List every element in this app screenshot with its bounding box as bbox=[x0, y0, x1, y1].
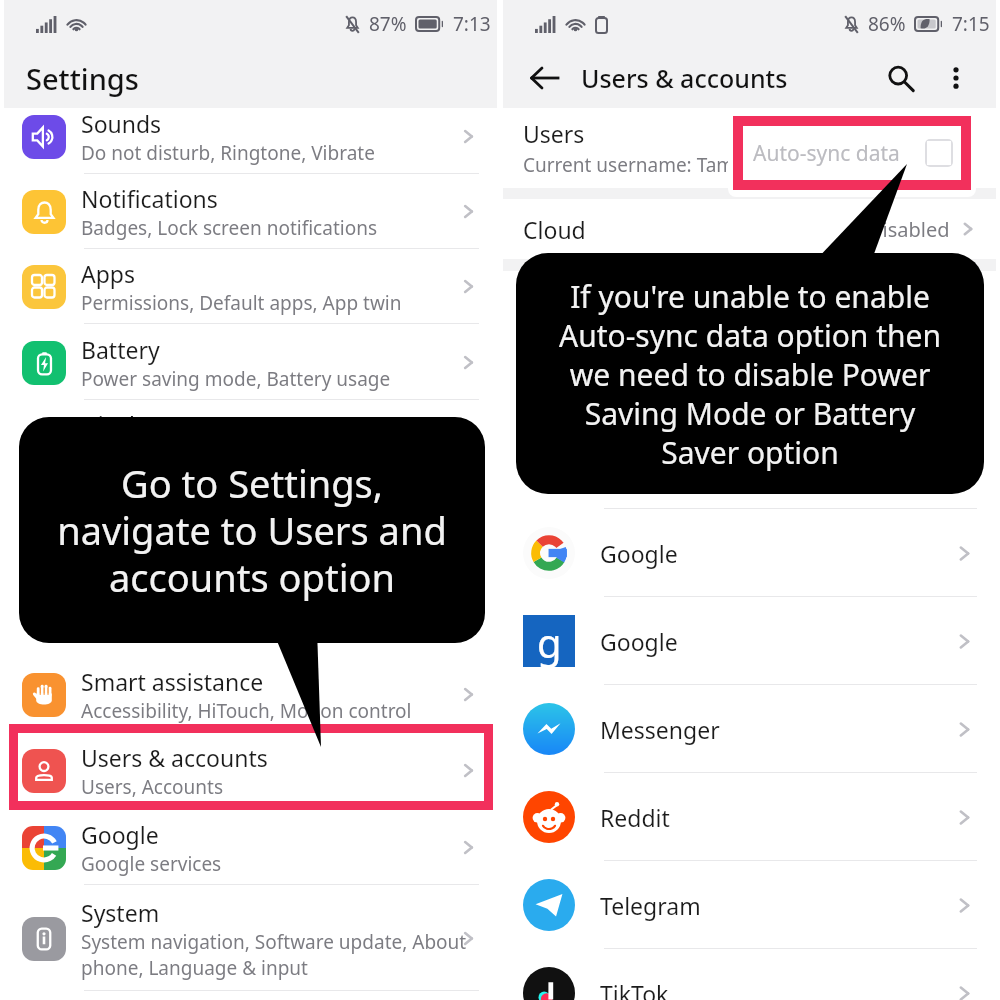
button[interactable]: Auto-sync data bbox=[743, 126, 961, 180]
staticText: Sounds bbox=[81, 108, 162, 139]
staticText: Go to Settings, navigate to Users and ac… bbox=[57, 457, 447, 603]
staticText: phone, Language & input bbox=[81, 955, 308, 981]
button[interactable]: Search bbox=[878, 56, 922, 100]
button[interactable]: Telegram bbox=[503, 861, 996, 949]
staticText: TikTok bbox=[600, 978, 669, 1000]
staticText: Users & accounts bbox=[581, 61, 788, 95]
button[interactable]: Users bbox=[503, 108, 996, 188]
button[interactable]: Users & accounts bbox=[4, 733, 497, 808]
button[interactable]: g bbox=[503, 597, 996, 685]
staticText: Battery bbox=[81, 334, 160, 365]
button[interactable]: Storage bbox=[4, 476, 497, 551]
staticText: Disabled bbox=[868, 216, 950, 243]
staticText: Users & accounts bbox=[81, 742, 268, 773]
staticText: Fingerprint ID, Face unlock bbox=[81, 592, 320, 618]
staticText: Smart assistance bbox=[81, 666, 264, 697]
button[interactable]: TikTok bbox=[503, 949, 996, 1000]
button[interactable]: Cloud bbox=[503, 199, 996, 259]
button[interactable]: Apps bbox=[4, 249, 497, 324]
staticText: Storage bbox=[81, 485, 165, 516]
staticText: Accessibility, HiTouch, Motion control bbox=[81, 698, 412, 724]
button[interactable]: Security & privacy bbox=[4, 551, 497, 626]
staticText: g bbox=[537, 615, 562, 667]
button[interactable]: Smart assistance bbox=[4, 657, 497, 732]
staticText: Telegram bbox=[600, 890, 701, 921]
button[interactable]: Sounds bbox=[4, 99, 497, 174]
staticText: Users & accounts bbox=[81, 742, 268, 773]
staticText: Messenger bbox=[600, 714, 720, 745]
staticText: 7:15 bbox=[952, 11, 990, 37]
staticText: Cloud bbox=[523, 214, 586, 245]
staticText: Security & privacy bbox=[81, 560, 274, 591]
button[interactable]: System bbox=[4, 886, 497, 991]
staticText: Reddit bbox=[600, 802, 670, 833]
staticText: Users bbox=[523, 118, 585, 149]
button[interactable]: More options bbox=[936, 58, 976, 98]
staticText: Power saving mode, Battery usage bbox=[81, 366, 391, 392]
staticText: Users, Accounts bbox=[81, 774, 224, 800]
button[interactable]: Google bbox=[4, 810, 497, 885]
staticText: Auto-sync data bbox=[753, 139, 900, 168]
button[interactable]: Back bbox=[523, 56, 567, 100]
staticText: Apps bbox=[81, 258, 136, 289]
button[interactable]: Messenger bbox=[503, 685, 996, 773]
staticText: 7:13 bbox=[453, 11, 491, 37]
staticText: System navigation, Software update, Abou… bbox=[81, 929, 467, 955]
staticText: Do not disturb, Ringtone, Vibrate bbox=[81, 140, 375, 166]
staticText: Google bbox=[600, 626, 678, 657]
button[interactable]: Display bbox=[4, 400, 497, 475]
button[interactable]: Google bbox=[503, 509, 996, 597]
button[interactable]: Users & accounts bbox=[4, 733, 497, 808]
staticText: Current username: Tamil bbox=[523, 152, 744, 178]
staticText: Users, Accounts bbox=[81, 774, 224, 800]
staticText: Memory, Storage cleaner bbox=[81, 517, 305, 543]
staticText: 86% bbox=[868, 11, 906, 37]
staticText: Google bbox=[81, 819, 159, 850]
staticText: Settings bbox=[26, 59, 139, 98]
staticText: Google services bbox=[81, 851, 222, 877]
staticText: Display bbox=[81, 409, 160, 440]
staticText: If you're unable to enable Auto-sync dat… bbox=[559, 276, 941, 472]
staticText: 87% bbox=[369, 11, 407, 37]
staticText: System bbox=[81, 897, 160, 928]
staticText: Notifications bbox=[81, 183, 218, 214]
button[interactable]: Reddit bbox=[503, 773, 996, 861]
button[interactable]: Notifications bbox=[4, 174, 497, 249]
button[interactable]: Battery bbox=[4, 325, 497, 400]
staticText: Permissions, Default apps, App twin bbox=[81, 290, 402, 316]
staticText: Badges, Lock screen notifications bbox=[81, 215, 378, 241]
staticText: Google bbox=[600, 538, 678, 569]
